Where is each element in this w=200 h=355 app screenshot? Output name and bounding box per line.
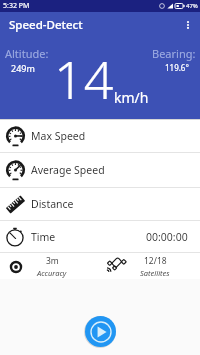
staticText: Max Speed — [31, 129, 86, 143]
button[interactable]: 3m — [0, 255, 100, 278]
staticText: Accuracy — [37, 268, 67, 278]
staticText: Bearing: — [152, 46, 196, 61]
staticText: 12/18 — [144, 255, 167, 267]
button[interactable]: Average Speed — [0, 153, 200, 187]
staticText: 249m — [11, 62, 35, 74]
staticText: Distance — [31, 197, 74, 211]
button[interactable]: Time — [0, 221, 200, 252]
staticText: 5:32 PM — [3, 1, 30, 11]
staticText: Time — [31, 230, 56, 244]
staticText: 14 — [54, 43, 114, 114]
button[interactable]: More options — [175, 12, 200, 37]
button[interactable]: Max Speed — [0, 120, 200, 152]
staticText: Altitude: — [5, 46, 49, 61]
staticText: 00:00:00 — [146, 230, 188, 244]
staticText: 3m — [46, 255, 59, 267]
staticText: Average Speed — [31, 163, 105, 177]
staticText: 47% — [186, 2, 198, 10]
staticText: 119.6° — [165, 62, 189, 73]
staticText: km/h — [114, 88, 149, 107]
staticText: Speed-Detect — [9, 17, 83, 33]
button[interactable]: Start tracking — [85, 316, 116, 347]
staticText: Satellites — [140, 268, 170, 278]
button[interactable]: Distance — [0, 188, 200, 220]
button[interactable]: 12/18 — [100, 254, 200, 278]
